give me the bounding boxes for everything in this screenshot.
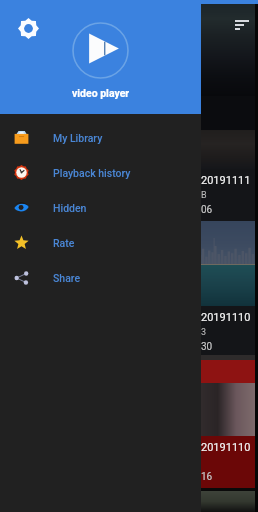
button[interactable]: Share <box>0 260 201 295</box>
staticText: 20191110… <box>201 311 255 324</box>
button[interactable]: Rate <box>0 225 201 260</box>
staticText: 06 <box>201 204 213 216</box>
staticText: 20191110… <box>201 441 255 454</box>
button[interactable]: 20191110… <box>199 355 255 488</box>
staticText: 30 <box>201 341 213 353</box>
staticText: 16 <box>201 471 213 483</box>
staticText: Hidden <box>53 202 87 214</box>
staticText: Playback history <box>53 167 131 179</box>
button[interactable]: My Library <box>0 120 201 155</box>
staticText: 20191111… <box>201 174 255 187</box>
staticText: video player <box>72 87 130 99</box>
button[interactable]: 20191110… <box>199 221 255 355</box>
staticText: Rate <box>53 237 75 249</box>
staticText: My Library <box>53 132 103 144</box>
staticText: 3 <box>201 327 207 338</box>
staticText: B <box>201 190 207 201</box>
button[interactable]: 20191111… <box>199 130 255 221</box>
button[interactable]: Settings <box>14 14 42 42</box>
button[interactable]: Hidden <box>0 190 201 225</box>
staticText: Share <box>53 272 81 284</box>
button[interactable]: Playback history <box>0 155 201 190</box>
